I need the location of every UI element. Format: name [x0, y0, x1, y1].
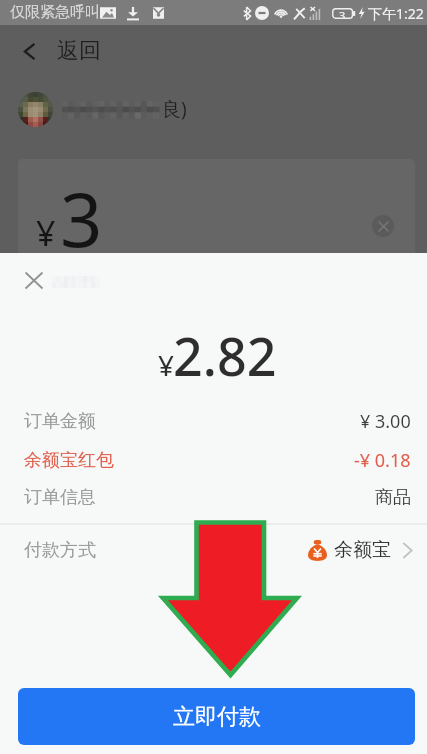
staticText: 付款方式: [24, 539, 96, 562]
button[interactable]: Clear amount: [372, 215, 394, 237]
staticText: 商品: [375, 486, 411, 509]
staticText: 2.82: [173, 320, 277, 391]
button[interactable]: 返回: [0, 27, 427, 75]
staticText: 余额宝红包: [24, 449, 114, 472]
staticText: 订单金额: [24, 410, 96, 433]
staticText: ¥ 3.00: [360, 409, 411, 434]
button[interactable]: Close: [20, 267, 47, 294]
staticText: 立即付款: [173, 703, 261, 731]
staticText: 下午1:22: [368, 4, 424, 22]
staticText: ¥: [158, 346, 175, 384]
staticText: 仅限紧急呼叫: [10, 3, 100, 22]
button[interactable]: 付款方式: [0, 527, 427, 573]
staticText: 返回: [57, 37, 101, 65]
staticText: 3: [60, 168, 103, 269]
staticText: -¥ 0.18: [354, 448, 411, 473]
staticText: 3: [339, 8, 346, 19]
staticText: 余额宝: [334, 538, 391, 562]
staticText: 良): [162, 96, 187, 122]
staticText: 订单信息: [24, 486, 96, 509]
staticText: ¥: [36, 210, 56, 256]
button[interactable]: 立即付款: [18, 688, 415, 745]
